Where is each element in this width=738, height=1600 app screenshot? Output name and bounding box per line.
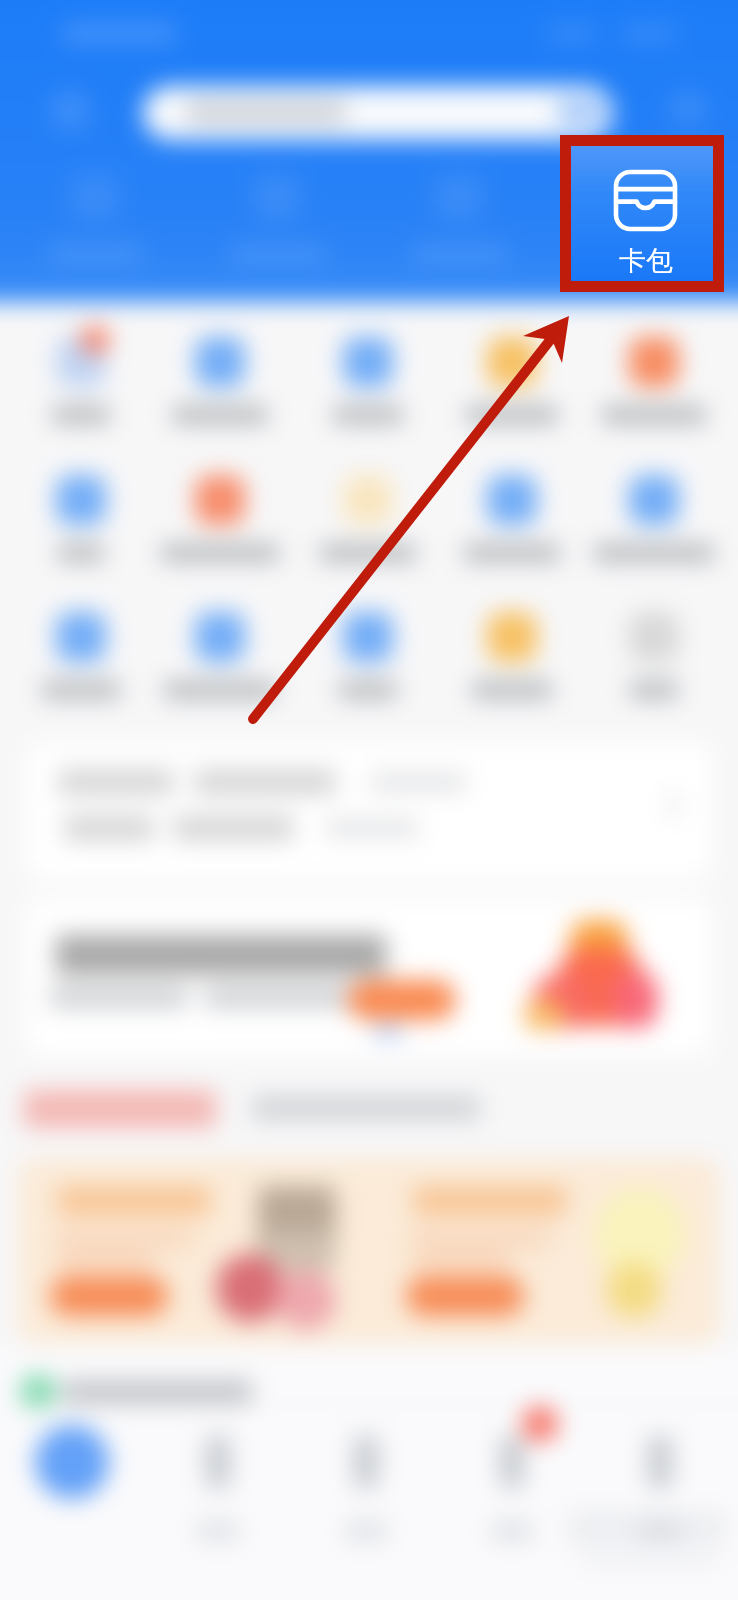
button[interactable]: 卡包 — [570, 168, 722, 278]
staticText: 卡包 — [619, 244, 673, 278]
